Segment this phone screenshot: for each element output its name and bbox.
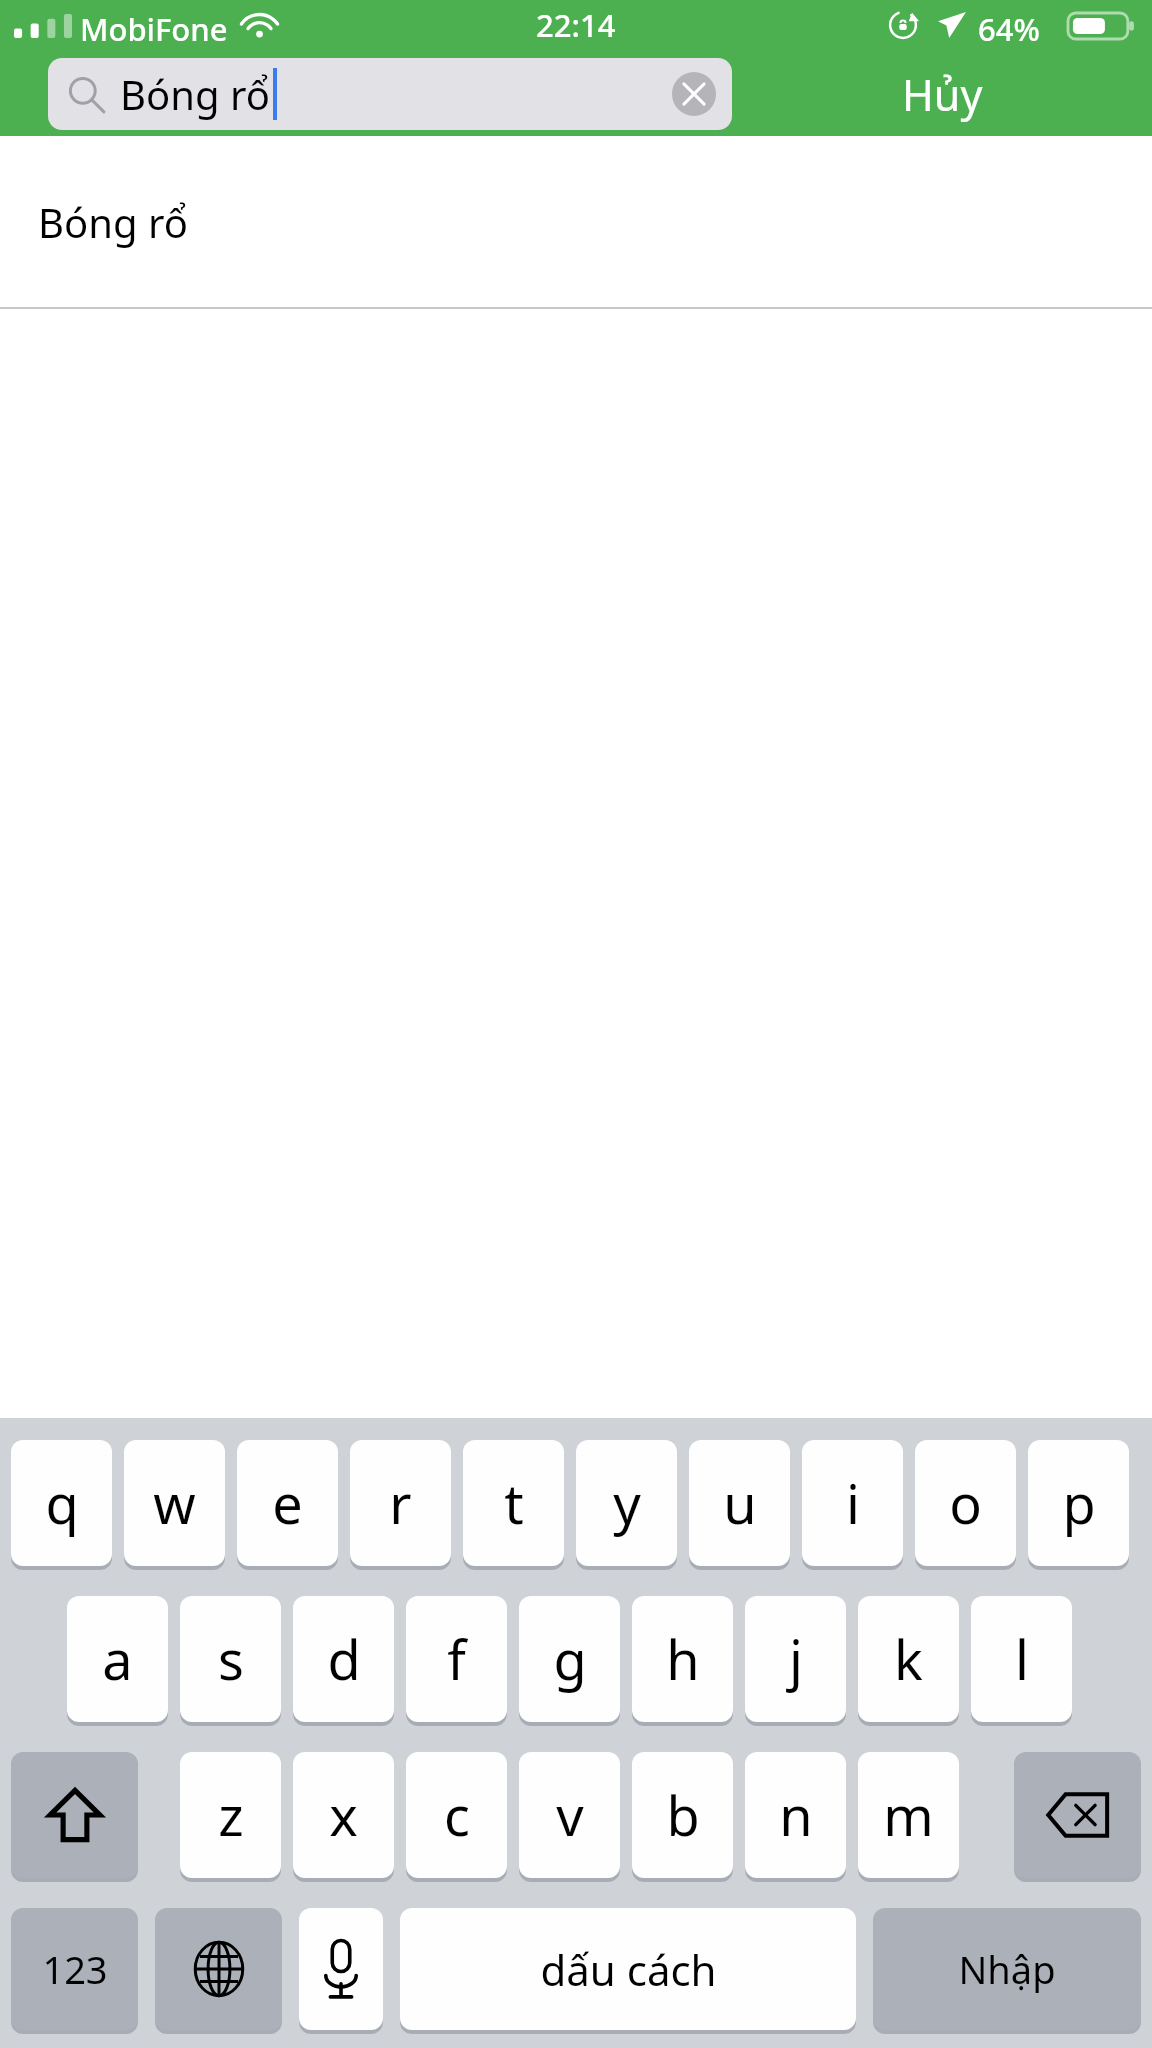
button[interactable]: t — [463, 1440, 564, 1566]
staticText: h — [666, 1622, 700, 1696]
staticText: b — [666, 1778, 700, 1852]
button[interactable]: v — [519, 1752, 620, 1878]
staticText: q — [45, 1466, 79, 1540]
staticText: dấu cách — [540, 1941, 717, 1998]
staticText: j — [789, 1622, 803, 1696]
staticText: u — [723, 1466, 757, 1540]
button[interactable]: Bóng rổ — [48, 58, 732, 130]
staticText: Nhập — [958, 1943, 1056, 1995]
staticText: o — [949, 1466, 982, 1540]
staticText: m — [883, 1778, 934, 1852]
button[interactable]: x — [293, 1752, 394, 1878]
staticText: t — [504, 1466, 524, 1540]
staticText: a — [102, 1622, 133, 1696]
button[interactable]: y — [576, 1440, 677, 1566]
button[interactable]: Bóng rổ — [0, 136, 1152, 307]
button[interactable]: h — [632, 1596, 733, 1722]
staticText: y — [613, 1466, 641, 1540]
staticText: MobiFone — [80, 8, 228, 50]
staticText: v — [556, 1778, 584, 1852]
staticText: 22:14 — [536, 4, 616, 46]
staticText: z — [218, 1778, 244, 1852]
staticText: d — [327, 1622, 361, 1696]
staticText: w — [153, 1466, 196, 1540]
button[interactable]: n — [745, 1752, 846, 1878]
button[interactable]: r — [350, 1440, 451, 1566]
staticText: 64% — [978, 8, 1040, 50]
staticText: l — [1015, 1622, 1029, 1696]
staticText: n — [779, 1778, 813, 1852]
button[interactable]: q — [11, 1440, 112, 1566]
staticText: Hủy — [902, 65, 983, 124]
button[interactable]: Hủy — [732, 58, 1152, 130]
staticText: g — [553, 1622, 587, 1696]
button[interactable]: g — [519, 1596, 620, 1722]
button[interactable]: 123 — [11, 1908, 138, 2030]
staticText: Bóng rổ — [38, 195, 188, 249]
button[interactable]: i — [802, 1440, 903, 1566]
staticText: x — [329, 1778, 358, 1852]
staticText: s — [218, 1622, 244, 1696]
staticText: 123 — [42, 1943, 108, 1995]
staticText: k — [894, 1622, 923, 1696]
staticText: e — [272, 1466, 303, 1540]
button[interactable]: a — [67, 1596, 168, 1722]
button[interactable]: u — [689, 1440, 790, 1566]
button[interactable]: o — [915, 1440, 1016, 1566]
button[interactable]: z — [180, 1752, 281, 1878]
staticText: r — [389, 1466, 412, 1540]
staticText: p — [1062, 1466, 1096, 1540]
staticText: c — [444, 1778, 470, 1852]
button[interactable]: p — [1028, 1440, 1129, 1566]
button[interactable]: w — [124, 1440, 225, 1566]
button[interactable]: d — [293, 1596, 394, 1722]
button[interactable]: k — [858, 1596, 959, 1722]
button[interactable]: Backspace — [1014, 1752, 1141, 1878]
button[interactable]: f — [406, 1596, 507, 1722]
button[interactable]: e — [237, 1440, 338, 1566]
button[interactable]: Dictation — [299, 1908, 383, 2030]
button[interactable]: Clear text — [672, 72, 716, 116]
button[interactable]: Switch keyboard — [155, 1908, 282, 2030]
button[interactable]: Nhập — [873, 1908, 1141, 2030]
button[interactable]: Shift — [11, 1752, 138, 1878]
button[interactable]: b — [632, 1752, 733, 1878]
staticText: Bóng rổ — [120, 67, 270, 121]
button[interactable]: j — [745, 1596, 846, 1722]
button[interactable]: m — [858, 1752, 959, 1878]
button[interactable]: dấu cách — [400, 1908, 856, 2030]
button[interactable]: l — [971, 1596, 1072, 1722]
button[interactable]: s — [180, 1596, 281, 1722]
staticText: f — [447, 1622, 466, 1696]
staticText: i — [846, 1466, 860, 1540]
button[interactable]: c — [406, 1752, 507, 1878]
